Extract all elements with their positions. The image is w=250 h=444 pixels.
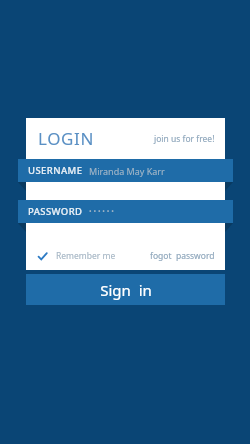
staticText: Sign in (100, 280, 152, 300)
button[interactable]: Username field (18, 159, 233, 182)
staticText: Miranda May Karr (89, 165, 165, 177)
button[interactable]: join us for free! (148, 127, 225, 151)
staticText: • • • • • • (89, 207, 114, 217)
staticText: LOGIN (38, 127, 94, 150)
button[interactable]: fogot password (146, 245, 219, 267)
staticText: fogot password (150, 250, 215, 262)
button[interactable]: Password field (18, 200, 233, 223)
staticText: USERNAME (28, 164, 83, 177)
staticText: join us for free! (154, 133, 215, 145)
button[interactable]: Remember me (34, 246, 120, 266)
staticText: Remember me (56, 250, 116, 262)
staticText: PASSWORD (28, 205, 83, 218)
button[interactable]: Sign in (26, 274, 225, 305)
